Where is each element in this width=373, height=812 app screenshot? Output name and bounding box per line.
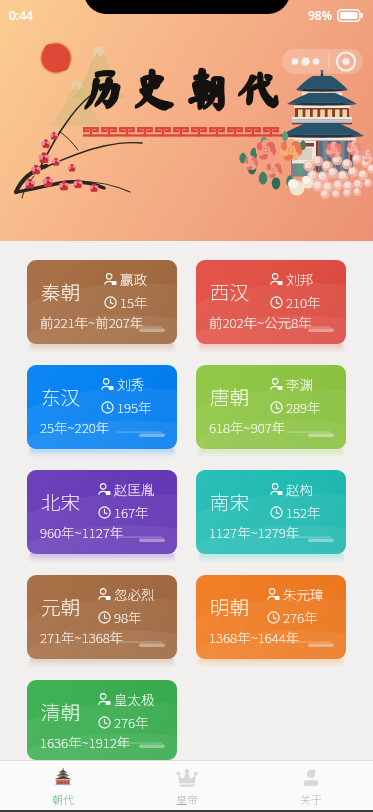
staticText: 西汉 (210, 277, 250, 305)
staticText: 关于 (300, 791, 322, 807)
button[interactable]: 东汉 (27, 365, 177, 449)
staticText: 276年 (114, 712, 149, 732)
button[interactable]: 清朝 (27, 680, 177, 760)
staticText: 代 (236, 68, 279, 111)
staticText: 271年~1368年 (40, 627, 124, 647)
staticText: 朝 (185, 66, 228, 109)
staticText: 历 (80, 66, 123, 109)
staticText: 代 (236, 67, 279, 110)
staticText: 史 (132, 66, 175, 109)
button[interactable]: 西汉 (196, 260, 346, 344)
staticText: 皇太极 (114, 689, 155, 709)
staticText: 东汉 (41, 382, 81, 410)
staticText: 276年 (283, 607, 318, 627)
button[interactable]: 南宋 (196, 470, 346, 554)
staticText: 朝 (184, 66, 227, 109)
staticText: 1127年~1279年 (209, 522, 300, 542)
staticText: 历 (80, 67, 123, 110)
staticText: 赵匡胤 (114, 479, 155, 499)
staticText: 朝 (184, 67, 227, 110)
button[interactable]: 秦朝 (27, 260, 177, 344)
staticText: 代 (236, 66, 279, 109)
staticText: 刘秀 (117, 374, 144, 394)
staticText: 史 (132, 67, 175, 110)
staticText: 明朝 (210, 592, 250, 620)
button[interactable]: 皇帝 (125, 761, 249, 810)
staticText: 210年 (286, 292, 321, 312)
staticText: 289年 (286, 397, 321, 417)
staticText: 代 (237, 67, 280, 110)
staticText: 史 (132, 68, 175, 111)
button[interactable]: 明朝 (196, 575, 346, 659)
staticText: 代 (237, 66, 280, 109)
staticText: 15年 (120, 292, 148, 312)
staticText: 清朝 (41, 697, 81, 725)
staticText: 25年~220年 (40, 417, 110, 437)
staticText: 北宋 (41, 487, 81, 515)
staticText: 赵构 (286, 479, 313, 499)
staticText: 秦朝 (41, 277, 81, 305)
staticText: 朝 (184, 68, 227, 111)
staticText: 历 (81, 67, 124, 110)
staticText: 195年 (117, 397, 152, 417)
staticText: 李渊 (286, 374, 313, 394)
staticText: 历 (82, 66, 125, 109)
button[interactable]: 北宋 (27, 470, 177, 554)
staticText: 历 (81, 66, 124, 109)
staticText: 嬴政 (120, 269, 147, 289)
staticText: 朝 (186, 66, 229, 109)
button[interactable]: 关于 (249, 761, 373, 810)
staticText: 元朝 (41, 592, 81, 620)
staticText: 618年~907年 (209, 417, 286, 437)
staticText: 史 (134, 66, 177, 109)
staticText: 忽必烈 (114, 584, 155, 604)
staticText: 史 (133, 66, 176, 109)
staticText: 南宋 (210, 487, 250, 515)
staticText: 代 (238, 66, 281, 109)
staticText: 167年 (114, 502, 149, 522)
staticText: 朱元璋 (283, 584, 324, 604)
staticText: 1368年~1644年 (209, 627, 300, 647)
staticText: 960年~1127年 (40, 522, 124, 542)
button[interactable]: 元朝 (27, 575, 177, 659)
staticText: 朝 (185, 67, 228, 110)
staticText: 1636年~1912年 (40, 732, 131, 748)
staticText: 刘邦 (286, 269, 313, 289)
staticText: 98% (308, 7, 332, 23)
staticText: 皇帝 (176, 791, 198, 807)
staticText: 前202年~公元8年 (209, 312, 312, 332)
staticText: 前221年~前207年 (40, 312, 144, 332)
button[interactable]: 朝代 (0, 761, 125, 810)
button[interactable]: 唐朝 (196, 365, 346, 449)
staticText: 历 (80, 68, 123, 111)
staticText: 朝代 (52, 791, 74, 807)
button[interactable]: More options (282, 49, 363, 74)
staticText: 152年 (286, 502, 321, 522)
staticText: 98年 (114, 607, 142, 627)
staticText: 0:44 (9, 7, 33, 23)
staticText: 史 (133, 67, 176, 110)
staticText: 唐朝 (210, 382, 250, 410)
